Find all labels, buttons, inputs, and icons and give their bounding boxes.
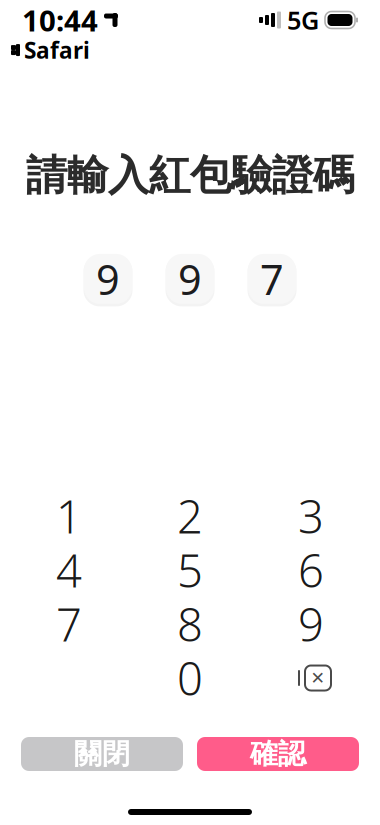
button[interactable]: Delete (250, 651, 371, 705)
button[interactable]: 關閉 (21, 737, 183, 771)
staticText: 9 (298, 594, 324, 654)
staticText: 10:44 (22, 0, 98, 39)
button[interactable]: 4 (8, 543, 129, 597)
staticText: 5G (287, 3, 319, 37)
staticText: 9 (178, 251, 202, 306)
staticText: 4 (56, 540, 82, 600)
staticText: 請輸入紅包驗證碼 (26, 150, 354, 201)
staticText: ✕ (310, 668, 325, 688)
staticText: 5 (177, 540, 203, 600)
staticText: 8 (177, 594, 203, 654)
button[interactable]: 確認 (197, 737, 359, 771)
button[interactable]: 8 (129, 597, 250, 651)
button[interactable]: Safari (7, 34, 93, 66)
button[interactable]: 9 (162, 249, 218, 309)
staticText: Safari (24, 35, 90, 65)
button[interactable]: 1 (8, 489, 129, 543)
button[interactable]: 5 (129, 543, 250, 597)
button[interactable]: 0 (129, 651, 250, 705)
staticText: 7 (260, 251, 284, 306)
button[interactable]: 9 (80, 249, 136, 309)
staticText: 1 (56, 486, 82, 546)
button[interactable]: 7 (8, 597, 129, 651)
staticText: 3 (298, 486, 324, 546)
staticText: 0 (177, 648, 203, 708)
staticText: 2 (177, 486, 203, 546)
button[interactable]: 6 (250, 543, 371, 597)
button[interactable]: 9 (250, 597, 371, 651)
button[interactable]: 3 (250, 489, 371, 543)
staticText: 7 (56, 594, 82, 654)
button[interactable]: 2 (129, 489, 250, 543)
staticText: 確認 (250, 737, 306, 771)
staticText: 9 (96, 251, 120, 306)
staticText: 關閉 (74, 737, 130, 771)
staticText: 6 (298, 540, 324, 600)
button[interactable]: 7 (244, 249, 300, 309)
